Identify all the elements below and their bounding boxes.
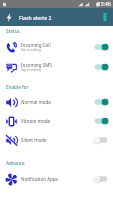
button[interactable]: Vibrate mode: [0, 113, 113, 128]
button[interactable]: Switch on: [93, 114, 109, 128]
staticText: Silent mode: [21, 137, 47, 143]
staticText: Notification Apps: [21, 176, 59, 182]
button[interactable]: Switch off: [93, 172, 109, 186]
staticText: Normal mode: [21, 99, 51, 105]
staticText: Vibrate mode: [21, 118, 51, 124]
button[interactable]: More options: [97, 8, 113, 26]
button[interactable]: Switch on: [93, 60, 109, 74]
staticText: Tap to setting: [21, 48, 41, 52]
staticText: Tap to setting: [21, 68, 41, 72]
staticText: Advance: [6, 160, 25, 166]
button[interactable]: Switch on: [93, 40, 109, 54]
staticText: Flash alerte 2: [19, 14, 52, 21]
staticText: Incoming Call: [21, 42, 51, 48]
button[interactable]: Switch off: [93, 133, 109, 147]
button[interactable]: Flash: [0, 8, 18, 26]
staticText: Enable for: [6, 84, 29, 90]
button[interactable]: Switch on: [93, 95, 109, 109]
button[interactable]: Incoming Call: [0, 37, 113, 56]
staticText: Incoming SMS: [21, 62, 52, 68]
button[interactable]: Normal mode: [0, 94, 113, 109]
staticText: Status: [6, 28, 20, 34]
button[interactable]: Silent mode: [0, 132, 113, 147]
button[interactable]: Notification Apps: [0, 171, 113, 186]
staticText: 13:46: [98, 1, 111, 8]
button[interactable]: Incoming SMS: [0, 57, 113, 76]
